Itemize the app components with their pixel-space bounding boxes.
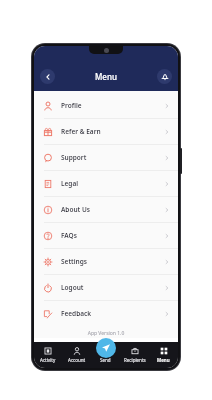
button[interactable]: FAQs: [34, 223, 178, 248]
staticText: Logout: [61, 283, 84, 292]
staticText: Support: [61, 153, 87, 162]
button[interactable]: Feedback: [34, 301, 178, 326]
button[interactable]: Legal: [34, 171, 178, 196]
button[interactable]: Send: [91, 342, 120, 368]
staticText: Feedback: [61, 309, 92, 318]
button[interactable]: About Us: [34, 197, 178, 222]
staticText: FAQs: [61, 231, 77, 240]
staticText: Legal: [61, 179, 79, 188]
staticText: Activity: [40, 357, 56, 363]
button[interactable]: Back: [40, 69, 55, 84]
button[interactable]: Account: [62, 342, 91, 368]
staticText: About Us: [61, 205, 90, 214]
button[interactable]: Logout: [34, 275, 178, 300]
staticText: Profile: [61, 101, 82, 110]
staticText: Account: [68, 357, 86, 363]
staticText: Send: [100, 357, 111, 363]
button[interactable]: Recipients: [120, 342, 149, 368]
staticText: Refer & Earn: [61, 127, 101, 136]
staticText: Menu: [95, 71, 117, 82]
staticText: App Version 1.0: [34, 330, 178, 337]
button[interactable]: Support: [34, 145, 178, 170]
staticText: Settings: [61, 257, 87, 266]
staticText: Recipients: [124, 357, 146, 363]
button[interactable]: Settings: [34, 249, 178, 274]
staticText: Menu: [157, 357, 170, 363]
button[interactable]: Refer & Earn: [34, 119, 178, 144]
button[interactable]: Send: [96, 338, 116, 358]
button[interactable]: Notifications: [157, 69, 172, 84]
button[interactable]: Activity: [34, 342, 62, 368]
button[interactable]: Profile: [34, 93, 178, 118]
button[interactable]: Menu: [149, 342, 178, 368]
